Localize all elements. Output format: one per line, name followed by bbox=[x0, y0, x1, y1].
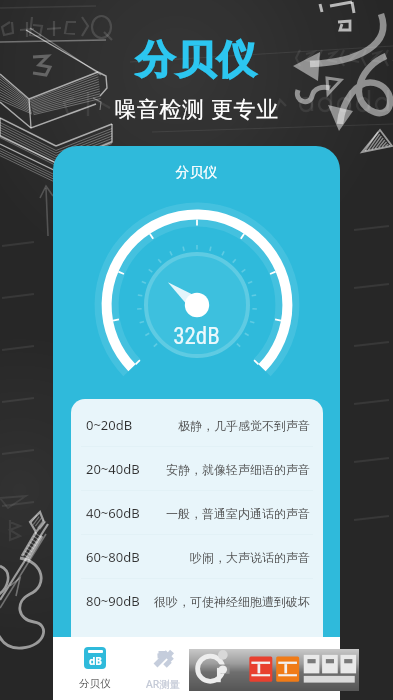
staticText: 80~90dB bbox=[86, 592, 140, 610]
staticText: 安静，就像轻声细语的声音 bbox=[166, 462, 310, 477]
staticText: 分贝仪 bbox=[0, 35, 393, 84]
staticText: AR测量 bbox=[146, 677, 181, 691]
staticText: 很吵，可使神经细胞遭到破坏 bbox=[154, 594, 310, 609]
button[interactable]: 0~20dB bbox=[71, 403, 323, 447]
button[interactable]: 80~90dB bbox=[71, 579, 323, 623]
staticText: dB bbox=[89, 654, 102, 668]
staticText: 0~20dB bbox=[86, 416, 133, 434]
staticText: 60~80dB bbox=[86, 548, 140, 566]
button[interactable]: 40~60dB bbox=[71, 491, 323, 535]
staticText: 分贝仪 bbox=[53, 164, 340, 182]
button[interactable]: AR测量 bbox=[129, 637, 198, 700]
staticText: 噪音检测 更专业 bbox=[0, 93, 393, 123]
staticText: 20~40dB bbox=[86, 460, 140, 478]
staticText: 32dB bbox=[53, 323, 340, 350]
button[interactable]: 60~80dB bbox=[71, 535, 323, 579]
staticText: 极静，几乎感觉不到声音 bbox=[178, 418, 310, 433]
staticText: 40~60dB bbox=[86, 504, 140, 522]
staticText: 分贝仪 bbox=[79, 677, 111, 690]
staticText: 一般，普通室内通话的声音 bbox=[166, 506, 310, 521]
button[interactable]: 20~40dB bbox=[71, 447, 323, 491]
button[interactable]: 分贝仪 bbox=[60, 637, 129, 700]
staticText: 吵闹，大声说话的声音 bbox=[190, 550, 310, 565]
